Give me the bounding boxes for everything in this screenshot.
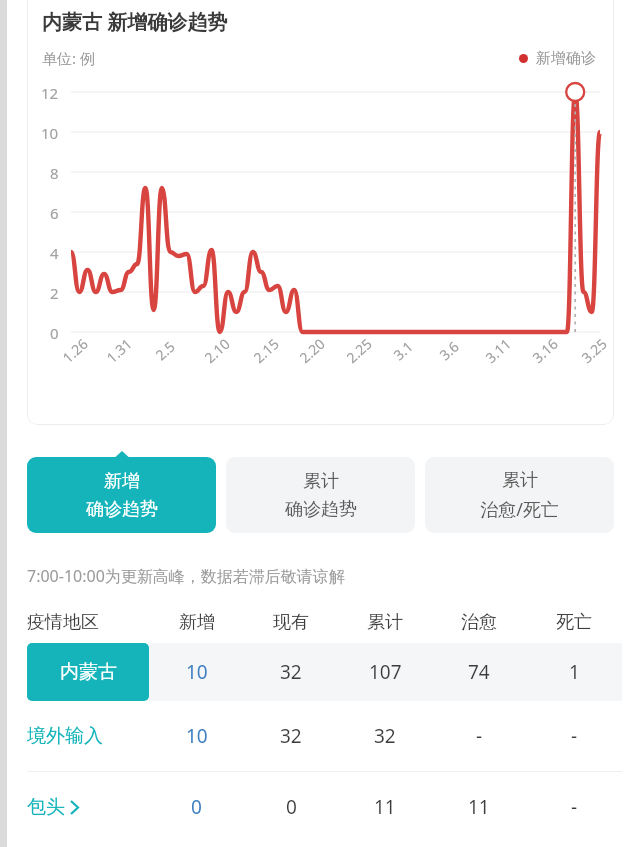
staticText: 2.20	[295, 334, 329, 367]
staticText: 1	[569, 659, 580, 685]
staticText: 11	[468, 794, 490, 820]
staticText: 107	[369, 659, 402, 685]
staticText: 8	[50, 163, 59, 183]
staticText: 确诊趋势	[285, 498, 357, 521]
staticText: -	[571, 794, 578, 820]
staticText: 2.15	[249, 334, 283, 367]
staticText: 治愈/死亡	[480, 497, 559, 522]
staticText: 2	[50, 283, 59, 303]
staticText: 现有	[273, 611, 309, 634]
staticText: 10	[41, 123, 59, 143]
staticText: 包头	[27, 795, 65, 819]
staticText: 3.25	[577, 334, 611, 367]
staticText: -	[476, 723, 483, 749]
button[interactable]: 内蒙古	[27, 643, 622, 701]
staticText: 3.6	[435, 337, 463, 364]
staticText: 0	[191, 794, 202, 820]
button[interactable]: 累计	[226, 451, 415, 533]
staticText: 新增确诊	[536, 49, 596, 68]
staticText: 疫情地区	[27, 611, 99, 634]
staticText: 11	[374, 794, 396, 820]
staticText: 10	[186, 659, 208, 685]
staticText: 内蒙古	[60, 660, 117, 684]
staticText: 累计	[502, 469, 538, 492]
staticText: 内蒙古 新增确诊趋势	[42, 8, 228, 35]
staticText: 累计	[303, 470, 339, 493]
staticText: 10	[186, 723, 208, 749]
staticText: 3.16	[528, 334, 562, 367]
staticText: 3.11	[481, 334, 515, 367]
staticText: 32	[280, 723, 302, 749]
staticText: 1.26	[58, 334, 92, 367]
staticText: 境外输入	[27, 724, 103, 748]
staticText: 确诊趋势	[86, 498, 158, 521]
staticText: 2.5	[151, 337, 179, 364]
staticText: 6	[50, 203, 59, 223]
staticText: 74	[468, 659, 490, 685]
staticText: 7:00-10:00为更新高峰，数据若滞后敬请谅解	[27, 565, 345, 587]
staticText: 4	[50, 243, 59, 263]
staticText: 32	[280, 659, 302, 685]
button[interactable]: 新增	[27, 451, 216, 533]
staticText: 2.10	[200, 334, 234, 367]
button[interactable]: 境外输入	[27, 701, 622, 771]
staticText: 32	[374, 723, 396, 749]
staticText: 死亡	[556, 611, 592, 634]
button[interactable]: 包头	[27, 772, 622, 842]
staticText: 单位: 例	[42, 48, 95, 68]
staticText: -	[571, 723, 578, 749]
staticText: 累计	[367, 611, 403, 634]
staticText: 1.31	[102, 334, 136, 367]
staticText: 3.1	[389, 337, 417, 364]
staticText: 治愈	[461, 611, 497, 634]
staticText: 2.25	[342, 334, 376, 367]
staticText: 新增	[104, 470, 140, 493]
staticText: 12	[41, 83, 59, 103]
staticText: 0	[50, 323, 59, 343]
staticText: 新增	[179, 611, 215, 634]
button[interactable]: 累计	[425, 451, 614, 533]
staticText: 0	[286, 794, 297, 820]
